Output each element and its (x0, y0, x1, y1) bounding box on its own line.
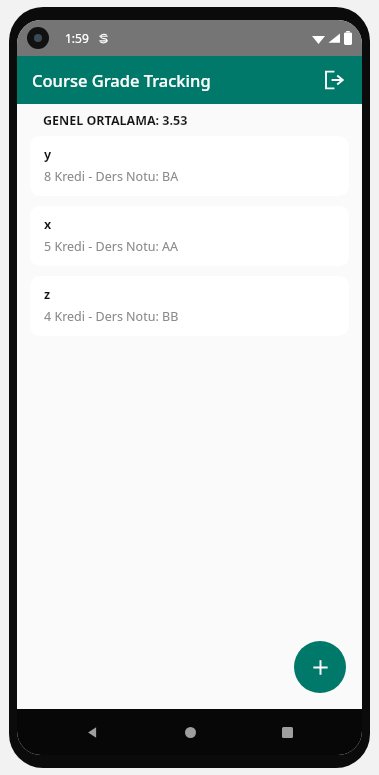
button[interactable]: y (30, 136, 349, 196)
button[interactable]: x (30, 206, 349, 266)
staticText: GENEL ORTALAMA: 3.53 (43, 112, 188, 129)
staticText: 4 Kredi - Ders Notu: BB (44, 308, 179, 325)
staticText: z (44, 286, 51, 303)
staticText: Course Grade Tracking (32, 69, 211, 91)
button[interactable]: Back (70, 710, 114, 754)
staticText: 8 Kredi - Ders Notu: BA (44, 168, 179, 185)
staticText: 1:59 (65, 30, 89, 46)
button[interactable]: Recent apps (265, 710, 309, 754)
button[interactable]: Logout (314, 60, 354, 100)
button[interactable]: Add course (294, 641, 346, 693)
button[interactable]: z (30, 276, 349, 336)
staticText: x (44, 216, 52, 233)
staticText: y (44, 146, 52, 163)
staticText: 5 Kredi - Ders Notu: AA (44, 238, 178, 255)
button[interactable]: Home (168, 710, 212, 754)
